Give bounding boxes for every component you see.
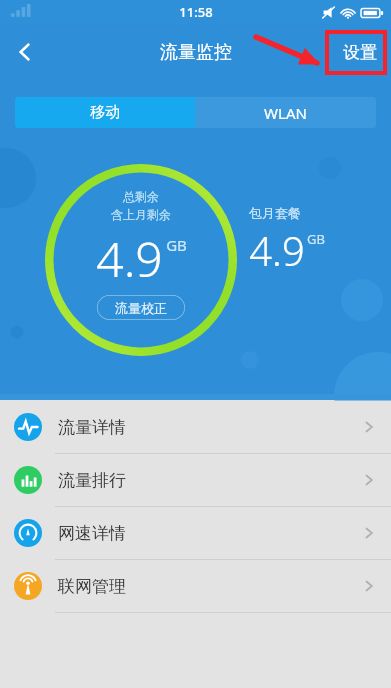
staticText: GB bbox=[166, 235, 187, 255]
button[interactable]: 移动 bbox=[15, 97, 195, 128]
button[interactable]: 流量详情 bbox=[0, 401, 391, 453]
staticText: WLAN bbox=[264, 103, 307, 123]
staticText: 网速详情 bbox=[58, 523, 126, 544]
staticText: 联网管理 bbox=[58, 576, 126, 597]
staticText: 总剩余 bbox=[123, 189, 159, 204]
staticText: GB bbox=[307, 230, 325, 248]
button[interactable]: 流量校正 bbox=[97, 295, 185, 320]
button[interactable]: 设置 bbox=[343, 42, 377, 63]
button[interactable]: 网速详情 bbox=[0, 507, 391, 559]
staticText: 含上月剩余 bbox=[111, 207, 171, 222]
staticText: 流量监控 bbox=[160, 41, 232, 64]
button[interactable]: WLAN bbox=[195, 97, 376, 128]
button[interactable]: Back bbox=[0, 24, 50, 80]
button[interactable]: 流量排行 bbox=[0, 454, 391, 506]
staticText: 4.9 bbox=[249, 223, 305, 277]
staticText: 移动 bbox=[90, 103, 120, 122]
staticText: 流量校正 bbox=[115, 300, 167, 316]
button[interactable]: 联网管理 bbox=[0, 560, 391, 612]
staticText: 设置 bbox=[343, 42, 377, 63]
staticText: 流量排行 bbox=[58, 470, 126, 491]
staticText: 11:58 bbox=[179, 3, 213, 21]
staticText: 4.9 bbox=[96, 226, 163, 291]
staticText: 流量详情 bbox=[58, 417, 126, 438]
staticText: 包月套餐 bbox=[249, 205, 301, 221]
